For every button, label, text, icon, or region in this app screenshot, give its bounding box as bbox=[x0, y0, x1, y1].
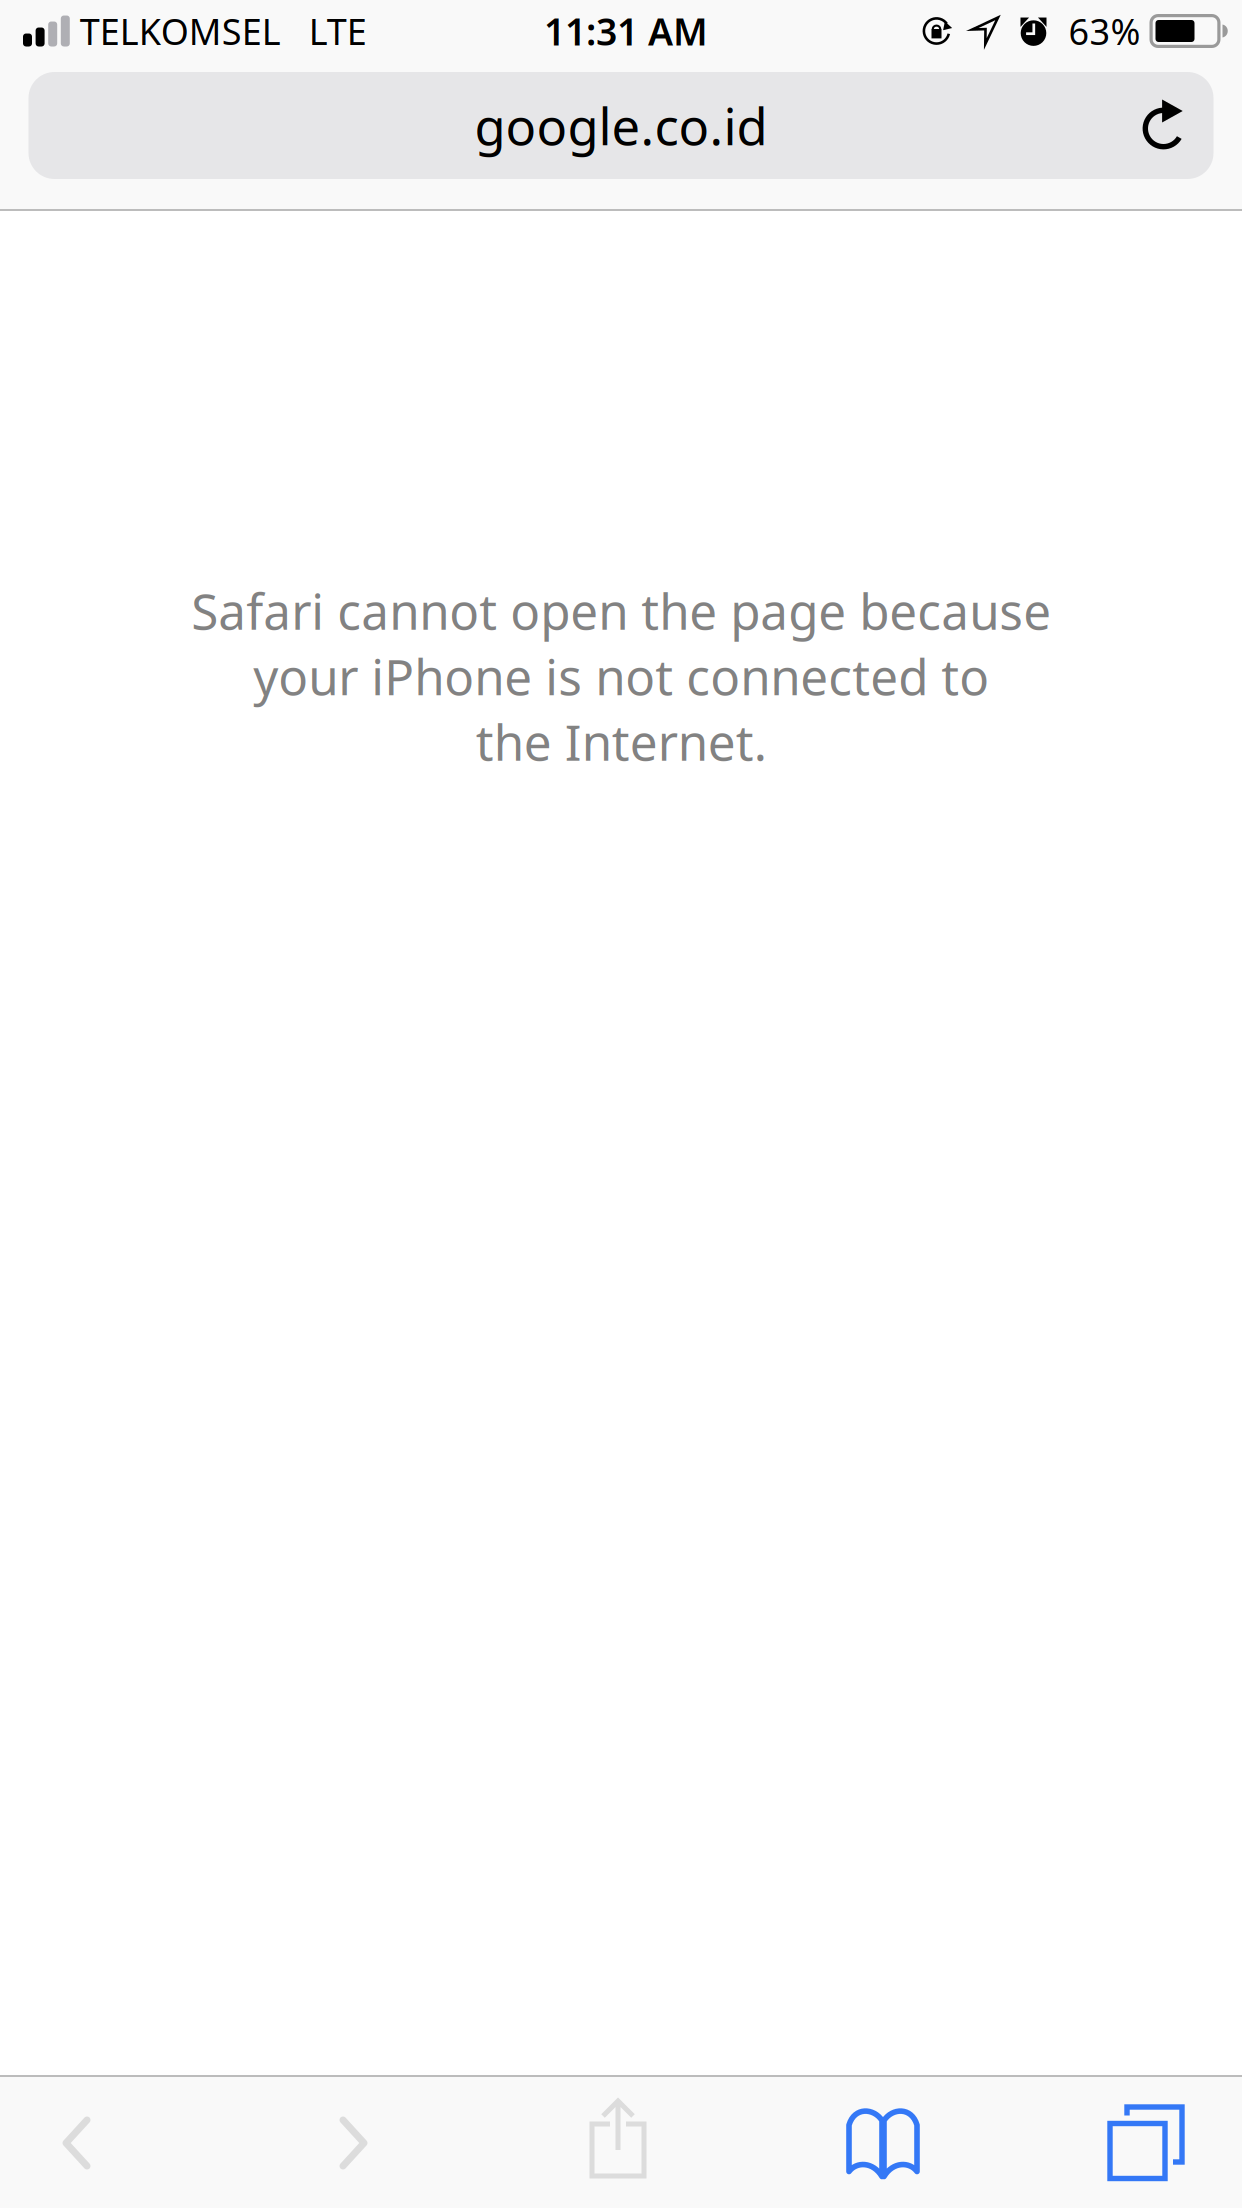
staticText: google.co.id bbox=[474, 92, 767, 159]
staticText: the Internet. bbox=[475, 709, 766, 774]
staticText: Safari cannot open the page because bbox=[191, 578, 1051, 643]
button[interactable]: Forward bbox=[235, 2075, 471, 2204]
button[interactable]: Bookmarks bbox=[765, 2075, 1001, 2204]
staticText: LTE bbox=[309, 7, 367, 55]
staticText: your iPhone is not connected to bbox=[253, 643, 989, 709]
staticText: TELKOMSEL bbox=[80, 7, 281, 55]
staticText: 11:31 AM bbox=[544, 6, 708, 56]
button[interactable]: Back bbox=[0, 2075, 195, 2204]
button[interactable]: Share bbox=[500, 2075, 736, 2204]
staticText: 63% bbox=[1068, 7, 1140, 55]
button[interactable]: Reload bbox=[1116, 71, 1212, 180]
button[interactable]: Tabs bbox=[1028, 2075, 1242, 2204]
